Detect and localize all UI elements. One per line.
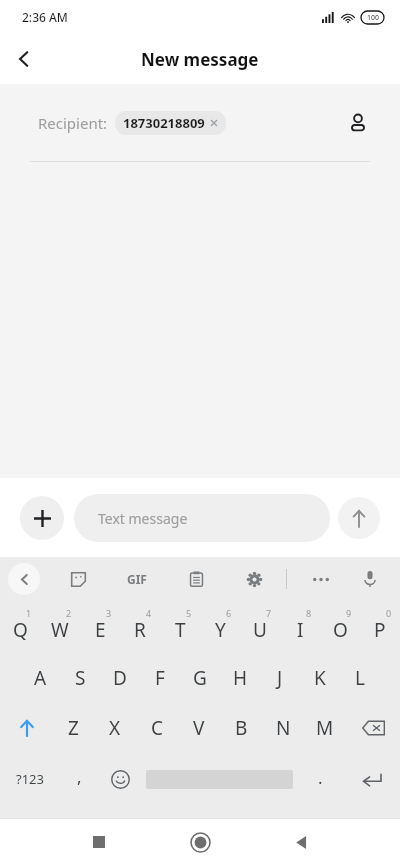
button[interactable]: Text message: [74, 494, 330, 542]
button[interactable]: Enter: [344, 753, 400, 805]
staticText: I: [297, 617, 304, 643]
button[interactable]: F: [140, 653, 180, 703]
button[interactable]: Q: [0, 601, 40, 653]
staticText: C: [151, 715, 164, 741]
staticText: R: [134, 617, 146, 643]
staticText: New message: [141, 48, 259, 71]
staticText: Y: [215, 617, 226, 643]
staticText: Text message: [98, 509, 188, 528]
button[interactable]: U: [240, 601, 280, 653]
button[interactable]: Home: [178, 820, 222, 864]
button[interactable]: Back: [0, 35, 48, 83]
button[interactable]: A: [20, 653, 60, 703]
button[interactable]: Clipboard: [178, 561, 214, 597]
button[interactable]: C: [136, 703, 178, 753]
staticText: K: [314, 665, 326, 691]
button[interactable]: Voice input: [350, 559, 390, 599]
button[interactable]: P: [360, 601, 400, 653]
button[interactable]: I: [280, 601, 320, 653]
button[interactable]: D: [100, 653, 140, 703]
button[interactable]: Back: [279, 820, 323, 864]
staticText: A: [34, 665, 47, 691]
staticText: 100: [367, 13, 380, 23]
button[interactable]: Stickers: [60, 561, 96, 597]
button[interactable]: Emoji: [99, 753, 142, 805]
button[interactable]: W: [40, 601, 80, 653]
button[interactable]: J: [260, 653, 300, 703]
staticText: M: [316, 715, 334, 741]
staticText: J: [277, 665, 283, 691]
button[interactable]: Close toolbar: [8, 563, 40, 595]
button[interactable]: Recent apps: [77, 820, 121, 864]
staticText: Q: [13, 617, 28, 643]
staticText: F: [155, 665, 165, 691]
button[interactable]: N: [262, 703, 304, 753]
button[interactable]: Shift: [0, 703, 53, 753]
button[interactable]: S: [60, 653, 100, 703]
staticText: 1: [26, 607, 32, 619]
staticText: .: [318, 766, 323, 789]
staticText: X: [109, 715, 121, 741]
staticText: S: [75, 665, 86, 691]
staticText: P: [374, 617, 386, 643]
staticText: 5: [186, 607, 192, 619]
button[interactable]: Contacts: [338, 103, 378, 143]
staticText: B: [235, 715, 248, 741]
staticText: N: [276, 715, 291, 741]
button[interactable]: H: [220, 653, 260, 703]
button[interactable]: Backspace: [346, 703, 400, 753]
staticText: 6: [226, 607, 232, 619]
staticText: V: [193, 715, 205, 741]
staticText: ,: [77, 765, 82, 788]
button[interactable]: X: [94, 703, 136, 753]
button[interactable]: K: [300, 653, 340, 703]
button[interactable]: Y: [200, 601, 240, 653]
button[interactable]: R: [120, 601, 160, 653]
button[interactable]: E: [80, 601, 120, 653]
button[interactable]: Settings: [236, 561, 272, 597]
staticText: Z: [68, 715, 79, 741]
staticText: E: [95, 617, 106, 643]
staticText: 2: [66, 607, 72, 619]
staticText: GIF: [127, 571, 147, 587]
button[interactable]: GIF: [118, 560, 156, 598]
staticText: H: [233, 665, 248, 691]
button[interactable]: M: [304, 703, 346, 753]
staticText: 4: [146, 607, 152, 619]
staticText: W: [51, 617, 69, 643]
staticText: Recipient:: [38, 113, 108, 133]
staticText: O: [333, 617, 348, 643]
staticText: U: [253, 617, 267, 643]
button[interactable]: V: [178, 703, 220, 753]
staticText: 0: [386, 607, 392, 619]
button[interactable]: Send: [338, 497, 380, 539]
button[interactable]: ?123: [0, 753, 60, 805]
staticText: T: [175, 617, 186, 643]
staticText: 9: [346, 607, 352, 619]
button[interactable]: O: [320, 601, 360, 653]
staticText: 8: [306, 607, 312, 619]
button[interactable]: T: [160, 601, 200, 653]
staticText: ?123: [16, 770, 44, 788]
button[interactable]: L: [340, 653, 380, 703]
button[interactable]: Add attachment: [20, 496, 64, 540]
button[interactable]: B: [220, 703, 262, 753]
staticText: 2:36 AM: [22, 9, 68, 25]
button[interactable]: ,: [60, 753, 99, 805]
button[interactable]: More options: [303, 561, 339, 597]
staticText: 7: [266, 607, 272, 619]
button[interactable]: .: [297, 753, 344, 805]
staticText: L: [355, 665, 365, 691]
staticText: 18730218809: [123, 114, 205, 132]
staticText: G: [193, 665, 207, 691]
button[interactable]: G: [180, 653, 220, 703]
button[interactable]: 18730218809: [115, 111, 226, 135]
staticText: 3: [106, 607, 112, 619]
button[interactable]: Z: [53, 703, 94, 753]
staticText: D: [113, 665, 127, 691]
